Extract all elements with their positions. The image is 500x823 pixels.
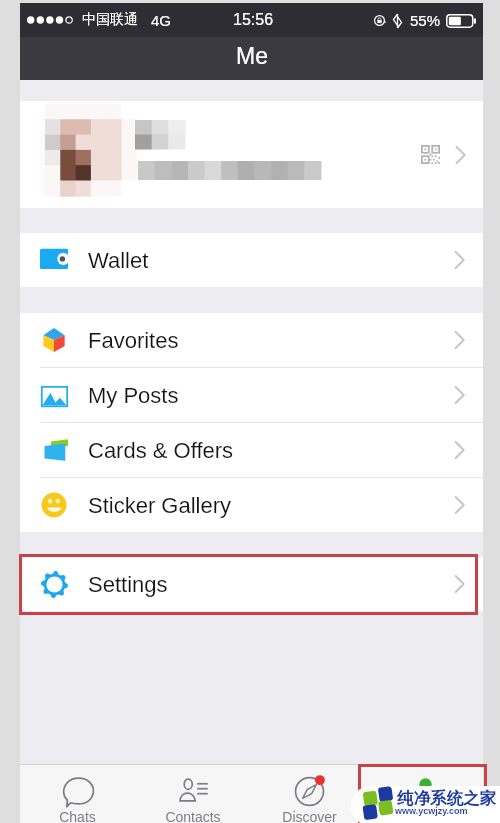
other: My QR code — [421, 145, 440, 164]
staticText: Wallet — [88, 248, 149, 273]
staticText: Favorites — [88, 328, 179, 353]
button[interactable]: Discover — [251, 765, 367, 823]
staticText: Chats — [59, 809, 96, 823]
staticText: Me — [415, 809, 435, 823]
staticText: Settings — [88, 572, 168, 597]
button[interactable]: Contacts — [135, 765, 251, 823]
staticText: Contacts — [165, 809, 221, 823]
staticText: Cards & Offers — [88, 438, 234, 463]
staticText: 中国联通 — [82, 11, 138, 29]
button[interactable]: My Posts — [20, 368, 483, 422]
button[interactable]: Cards & Offers — [20, 423, 483, 477]
button[interactable]: Settings — [20, 557, 483, 611]
staticText: 4G — [151, 12, 172, 29]
staticText: My Posts — [88, 383, 179, 408]
button[interactable]: Wallet — [20, 233, 483, 287]
staticText: Me — [236, 43, 268, 69]
staticText: Discover — [282, 809, 337, 823]
button[interactable]: Me — [367, 765, 483, 823]
staticText: www.ycwjzy.com — [395, 806, 468, 816]
button[interactable]: Sticker Gallery — [20, 478, 483, 532]
button[interactable]: My QR code — [20, 101, 483, 208]
staticText: 55% — [410, 12, 441, 29]
staticText: 纯净系统之家 — [397, 788, 496, 809]
button[interactable]: Chats — [20, 765, 135, 823]
button[interactable]: Favorites — [20, 313, 483, 367]
staticText: Sticker Gallery — [88, 493, 232, 518]
staticText: 15:56 — [233, 11, 274, 29]
